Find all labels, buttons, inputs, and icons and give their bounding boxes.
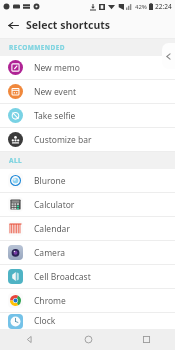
staticText: Chrome <box>34 295 66 307</box>
button[interactable]: Back <box>0 12 26 38</box>
button[interactable]: Take selfie <box>0 104 175 127</box>
staticText: Take selfie <box>34 110 76 122</box>
button[interactable]: New memo <box>0 56 175 79</box>
button[interactable]: Blurone <box>0 169 175 192</box>
staticText: Clock <box>34 315 56 327</box>
staticText: ALL <box>9 156 22 165</box>
staticText: Customize bar <box>34 134 92 146</box>
staticText: Camera <box>34 247 65 259</box>
staticText: Calendar <box>34 223 70 235</box>
button[interactable]: Open panel <box>162 43 175 69</box>
staticText: Cell Broadcast <box>34 271 91 283</box>
button[interactable]: New event <box>0 80 175 103</box>
staticText: RECOMMENDED <box>9 43 65 52</box>
staticText: 42% <box>135 3 147 11</box>
button[interactable]: Recents <box>117 329 175 350</box>
staticText: Select shortcuts <box>26 18 111 32</box>
button[interactable]: Cell Broadcast <box>0 265 175 288</box>
staticText: New event <box>34 86 77 98</box>
button[interactable]: Back <box>0 329 59 350</box>
staticText: 22:24 <box>155 2 172 11</box>
button[interactable]: Chrome <box>0 289 175 312</box>
button[interactable]: Calendar <box>0 217 175 240</box>
button[interactable]: Calculator <box>0 193 175 216</box>
staticText: Calculator <box>34 199 75 211</box>
button[interactable]: Camera <box>0 241 175 264</box>
staticText: Blurone <box>34 175 66 187</box>
button[interactable]: Home <box>59 329 117 350</box>
staticText: New memo <box>34 62 80 74</box>
button[interactable]: Clock <box>0 313 175 329</box>
button[interactable]: Customize bar <box>0 128 175 151</box>
